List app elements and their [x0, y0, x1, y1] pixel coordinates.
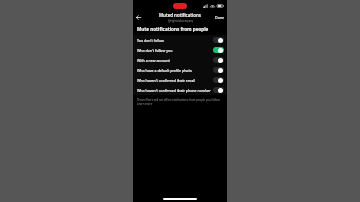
- staticText: Muted notifications: [159, 12, 202, 18]
- staticText: @nightclubcompany: [168, 19, 194, 23]
- staticText: You don't follow: [137, 38, 164, 43]
- button[interactable]: On: [213, 47, 224, 53]
- staticText: Who haven't confirmed their phone number: [137, 88, 211, 93]
- button[interactable]: Off: [213, 77, 224, 83]
- button[interactable]: Off: [213, 57, 224, 63]
- button[interactable]: Back: [133, 12, 143, 22]
- button[interactable]: Who don't follow you: [133, 45, 227, 55]
- button[interactable]: You don't follow: [133, 35, 227, 45]
- staticText: These filters will not affect notificati…: [137, 98, 223, 106]
- staticText: With a new account: [137, 58, 170, 63]
- button[interactable]: Off: [213, 37, 224, 43]
- button[interactable]: Who haven't confirmed their phone number: [133, 85, 227, 95]
- staticText: Who don't follow you: [137, 48, 173, 53]
- button[interactable]: Off: [213, 67, 224, 73]
- staticText: Who have a default profile photo: [137, 68, 192, 73]
- staticText: Done: [215, 15, 225, 20]
- button[interactable]: Off: [213, 87, 224, 93]
- staticText: Mute notifications from people: [137, 26, 209, 32]
- button[interactable]: With a new account: [133, 55, 227, 65]
- button[interactable]: Who haven't confirmed their email: [133, 75, 227, 85]
- staticText: Who haven't confirmed their email: [137, 78, 196, 83]
- button[interactable]: Done: [213, 14, 227, 21]
- button[interactable]: Who have a default profile photo: [133, 65, 227, 75]
